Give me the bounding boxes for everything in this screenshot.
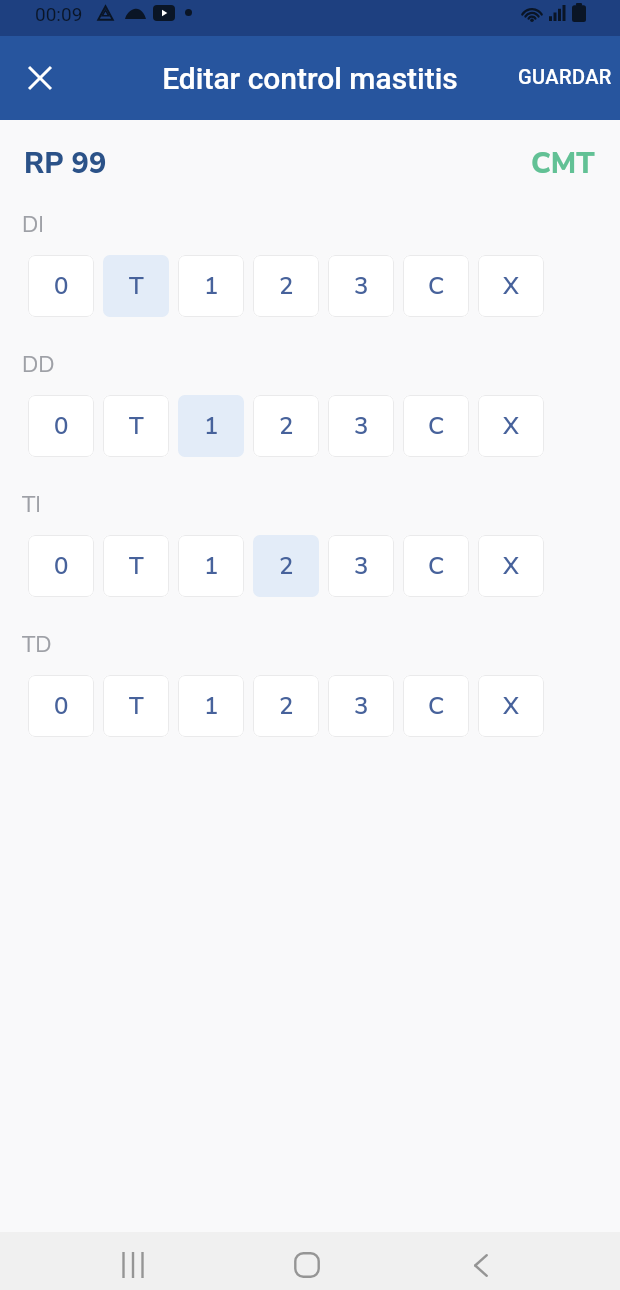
button[interactable]: X bbox=[478, 535, 544, 597]
button[interactable]: Cerrar bbox=[18, 56, 62, 100]
button[interactable]: C bbox=[403, 535, 469, 597]
button[interactable]: 2 bbox=[253, 395, 319, 457]
button[interactable]: X bbox=[478, 395, 544, 457]
button[interactable]: X bbox=[478, 255, 544, 317]
staticText: GUARDAR bbox=[518, 65, 612, 88]
staticText: 0 bbox=[54, 690, 69, 723]
button[interactable]: T bbox=[103, 535, 169, 597]
staticText: 3 bbox=[354, 270, 369, 303]
staticText: T bbox=[129, 410, 144, 443]
button[interactable]: 1 bbox=[178, 395, 244, 457]
button[interactable]: 0 bbox=[28, 675, 94, 737]
staticText: 0 bbox=[54, 270, 69, 303]
staticText: X bbox=[503, 410, 519, 443]
staticText: C bbox=[428, 550, 445, 583]
staticText: 2 bbox=[279, 270, 294, 303]
staticText: C bbox=[428, 410, 445, 443]
staticText: 2 bbox=[279, 690, 294, 723]
staticText: C bbox=[428, 690, 445, 723]
staticText: TD bbox=[22, 630, 52, 660]
staticText: 00:09 bbox=[35, 3, 83, 22]
staticText: DI bbox=[22, 210, 44, 240]
button[interactable]: 2 bbox=[253, 675, 319, 737]
button[interactable]: 1 bbox=[178, 675, 244, 737]
staticText: T bbox=[129, 690, 144, 723]
button[interactable]: 3 bbox=[328, 395, 394, 457]
staticText: 1 bbox=[204, 690, 219, 723]
button[interactable]: T bbox=[103, 675, 169, 737]
button[interactable]: 1 bbox=[178, 255, 244, 317]
staticText: CMT bbox=[531, 144, 595, 184]
staticText: 2 bbox=[279, 410, 294, 443]
staticText: 3 bbox=[354, 410, 369, 443]
staticText: 2 bbox=[279, 550, 294, 583]
button[interactable]: 2 bbox=[253, 255, 319, 317]
staticText: 1 bbox=[204, 270, 219, 303]
staticText: Editar control mastitis bbox=[162, 61, 458, 96]
staticText: T bbox=[129, 550, 144, 583]
staticText: C bbox=[428, 270, 445, 303]
staticText: 3 bbox=[354, 550, 369, 583]
staticText: T bbox=[129, 270, 144, 303]
button[interactable]: 2 bbox=[253, 535, 319, 597]
staticText: 0 bbox=[54, 550, 69, 583]
staticText: X bbox=[503, 690, 519, 723]
staticText: X bbox=[503, 270, 519, 303]
button[interactable]: C bbox=[403, 675, 469, 737]
staticText: DD bbox=[22, 350, 55, 380]
button[interactable]: 3 bbox=[328, 535, 394, 597]
staticText: X bbox=[503, 550, 519, 583]
button[interactable]: 0 bbox=[28, 395, 94, 457]
button[interactable]: C bbox=[403, 395, 469, 457]
staticText: 1 bbox=[204, 550, 219, 583]
staticText: 1 bbox=[204, 410, 219, 443]
button[interactable]: Recents bbox=[105, 1240, 161, 1290]
button[interactable]: C bbox=[403, 255, 469, 317]
button[interactable]: X bbox=[478, 675, 544, 737]
button[interactable]: 3 bbox=[328, 255, 394, 317]
staticText: TI bbox=[22, 490, 41, 520]
button[interactable]: Back bbox=[453, 1240, 509, 1290]
button[interactable]: T bbox=[103, 255, 169, 317]
button[interactable]: 0 bbox=[28, 255, 94, 317]
button[interactable]: Home bbox=[279, 1240, 335, 1290]
button[interactable]: 1 bbox=[178, 535, 244, 597]
button[interactable]: T bbox=[103, 395, 169, 457]
staticText: 3 bbox=[354, 690, 369, 723]
staticText: RP 99 bbox=[24, 144, 107, 184]
staticText: 0 bbox=[54, 410, 69, 443]
button[interactable]: 0 bbox=[28, 535, 94, 597]
button[interactable]: GUARDAR bbox=[510, 57, 616, 100]
button[interactable]: 3 bbox=[328, 675, 394, 737]
